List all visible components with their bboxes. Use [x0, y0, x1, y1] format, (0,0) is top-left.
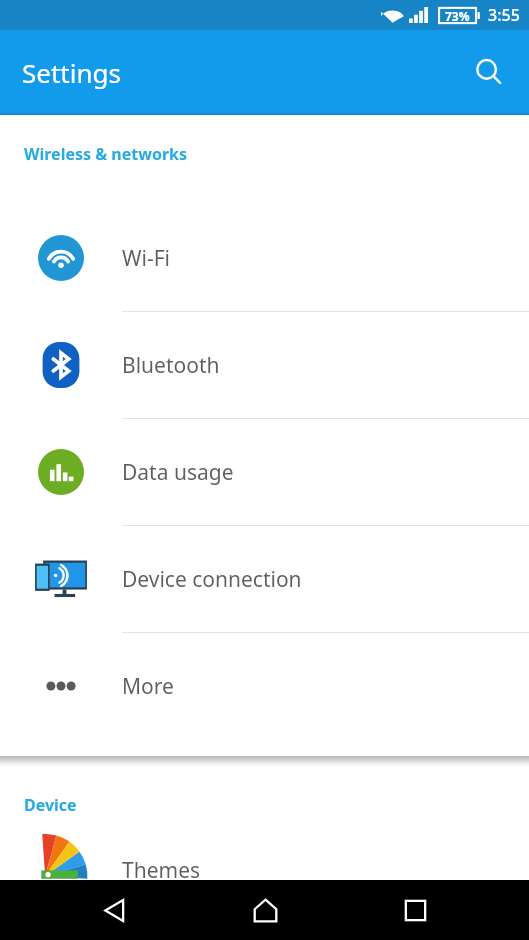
button[interactable]: Device connection [0, 526, 529, 632]
button[interactable]: Bluetooth [0, 312, 529, 418]
button[interactable]: Search [462, 46, 516, 100]
button[interactable]: More [0, 633, 529, 739]
staticText: Wireless & networks [24, 143, 188, 165]
staticText: Settings [22, 55, 121, 90]
button[interactable]: Themes [0, 856, 529, 880]
button[interactable]: Recents [379, 880, 451, 940]
button[interactable]: Back [78, 880, 150, 940]
button[interactable]: Home [229, 880, 301, 940]
button[interactable]: Wi-Fi [0, 205, 529, 311]
staticText: 73% [445, 8, 470, 24]
staticText: Data usage [122, 458, 234, 487]
button[interactable]: Data usage [0, 419, 529, 525]
staticText: Device connection [122, 565, 302, 594]
staticText: Wi-Fi [122, 244, 171, 273]
staticText: Device [24, 794, 77, 816]
staticText: Bluetooth [122, 351, 220, 380]
staticText: 3:55 [488, 4, 520, 26]
staticText: Themes [122, 856, 201, 880]
staticText: More [122, 672, 174, 701]
